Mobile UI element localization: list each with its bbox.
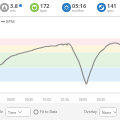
- button[interactable]: Time: [5, 107, 31, 117]
- staticText: None: [102, 110, 112, 115]
- button[interactable]: spm: [92, 0, 120, 14]
- staticText: 01:00: [43, 98, 51, 102]
- staticText: spm: [107, 9, 114, 13]
- staticText: Fit to Data: [40, 109, 58, 114]
- button[interactable]: None: [99, 107, 117, 117]
- button[interactable]: min/km: [59, 0, 92, 14]
- staticText: 141: [107, 2, 117, 9]
- staticText: m/s: [10, 9, 16, 13]
- button[interactable]: Refresh: [33, 109, 39, 115]
- button[interactable]: bpm: [29, 0, 59, 14]
- staticText: 05:16: [72, 2, 87, 9]
- staticText: 02:00: [79, 98, 87, 102]
- staticText: bpm: [40, 9, 47, 13]
- staticText: 00:30: [25, 98, 33, 102]
- button[interactable]: BPM: [1, 17, 15, 25]
- staticText: Time: [8, 110, 17, 115]
- staticText: 02:30: [97, 98, 105, 102]
- other: m/s: [0, 3, 9, 12]
- staticText: Overlay: [84, 109, 97, 114]
- staticText: 01:30: [61, 98, 69, 102]
- other: spm: [97, 3, 106, 12]
- staticText: 00:00: [7, 98, 15, 102]
- staticText: min/km: [72, 9, 84, 13]
- staticText: BPM: [6, 19, 15, 24]
- staticText: le: [0, 109, 3, 114]
- button[interactable]: m/s: [0, 0, 29, 14]
- other: min/km: [62, 3, 71, 12]
- staticText: 3.8: [10, 2, 18, 9]
- other: bpm: [30, 3, 39, 12]
- staticText: 172: [40, 2, 50, 9]
